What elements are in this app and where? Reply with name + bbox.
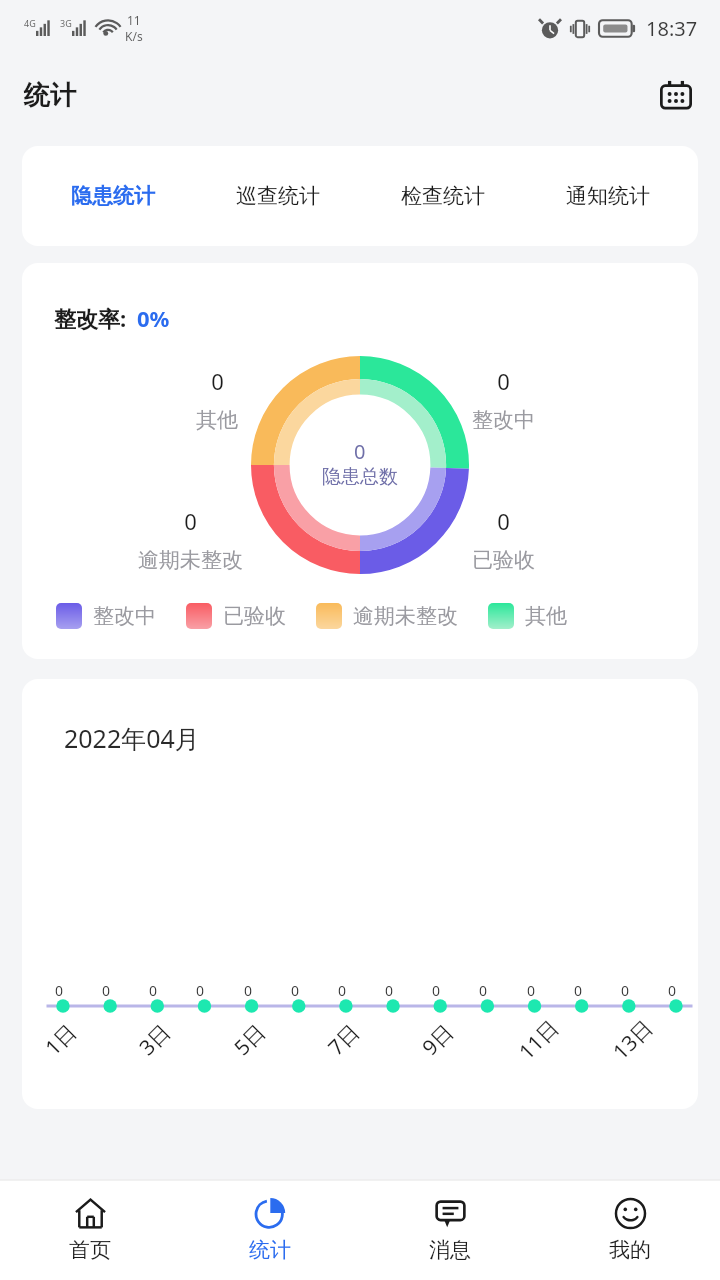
staticText: 其他: [196, 407, 238, 433]
staticText: 11: [127, 12, 141, 28]
staticText: 0: [149, 981, 158, 1000]
staticText: 1日: [39, 1017, 83, 1062]
staticText: 0: [184, 506, 197, 536]
staticText: 3日: [133, 1017, 177, 1062]
button[interactable]: 检查统计: [360, 146, 525, 246]
button[interactable]: 其他: [488, 603, 567, 629]
staticText: 整改中: [472, 407, 535, 433]
staticText: 0: [385, 981, 394, 1000]
staticText: 0: [497, 366, 510, 396]
staticText: 0: [196, 981, 205, 1000]
staticText: 5日: [228, 1017, 272, 1062]
staticText: 我的: [609, 1237, 651, 1263]
staticText: 0: [102, 981, 111, 1000]
staticText: 0: [55, 981, 64, 1000]
button[interactable]: 整改中: [56, 603, 156, 629]
staticText: 0: [574, 981, 583, 1000]
staticText: 11日: [512, 1013, 565, 1066]
staticText: 0: [211, 366, 224, 396]
staticText: 18:37: [646, 15, 698, 42]
button[interactable]: 统计: [180, 1180, 360, 1280]
staticText: 0: [244, 981, 253, 1000]
button[interactable]: Calendar: [652, 71, 700, 119]
button[interactable]: 巡查统计: [195, 146, 360, 246]
staticText: 统计: [24, 79, 76, 112]
staticText: 0: [354, 438, 366, 465]
staticText: 0: [291, 981, 300, 1000]
staticText: 通知统计: [566, 183, 650, 209]
button[interactable]: 逾期未整改: [316, 603, 458, 629]
staticText: 已验收: [472, 547, 535, 573]
staticText: 0: [338, 981, 347, 1000]
staticText: 已验收: [223, 603, 286, 629]
staticText: 4G: [24, 17, 36, 29]
staticText: 巡查统计: [236, 183, 320, 209]
button[interactable]: 已验收: [186, 603, 286, 629]
staticText: 3G: [60, 17, 72, 29]
staticText: 整改率:: [54, 303, 127, 333]
staticText: 逾期未整改: [138, 547, 243, 573]
button[interactable]: 通知统计: [525, 146, 690, 246]
staticText: 整改中: [93, 603, 156, 629]
staticText: 逾期未整改: [353, 603, 458, 629]
staticText: 9日: [416, 1017, 460, 1062]
staticText: 0: [432, 981, 441, 1000]
staticText: 其他: [525, 603, 567, 629]
staticText: 隐患总数: [322, 465, 398, 489]
staticText: 统计: [249, 1237, 291, 1263]
staticText: 13日: [606, 1013, 659, 1066]
button[interactable]: 消息: [360, 1180, 540, 1280]
button[interactable]: 隐患统计: [30, 146, 195, 246]
staticText: 隐患统计: [71, 183, 155, 209]
staticText: 消息: [429, 1237, 471, 1263]
staticText: 0: [497, 506, 510, 536]
staticText: K/s: [125, 28, 143, 44]
staticText: 检查统计: [401, 183, 485, 209]
staticText: 首页: [69, 1237, 111, 1263]
staticText: 0: [621, 981, 630, 1000]
button[interactable]: 我的: [540, 1180, 720, 1280]
staticText: 2022年04月: [64, 721, 200, 755]
staticText: 0: [479, 981, 488, 1000]
staticText: 0: [668, 981, 677, 1000]
staticText: 0%: [137, 303, 170, 333]
staticText: 0: [527, 981, 536, 1000]
button[interactable]: 首页: [0, 1180, 180, 1280]
staticText: 7日: [322, 1017, 366, 1062]
